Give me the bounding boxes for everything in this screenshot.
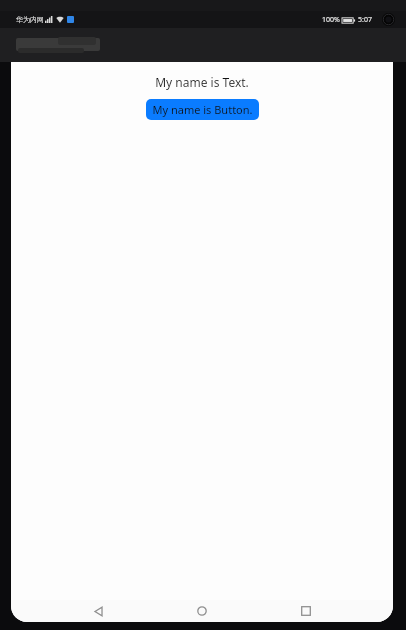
staticText: 100% <box>322 15 340 25</box>
button[interactable]: My name is Button. <box>146 99 259 120</box>
staticText: 华为内网 <box>16 15 44 24</box>
staticText: My name is Text. <box>155 74 249 90</box>
button[interactable]: Back <box>81 600 115 622</box>
button[interactable]: Home <box>185 600 219 622</box>
staticText: 5:07 <box>358 15 372 25</box>
staticText: My name is Button. <box>152 102 253 117</box>
button[interactable]: Recent apps <box>289 600 323 622</box>
